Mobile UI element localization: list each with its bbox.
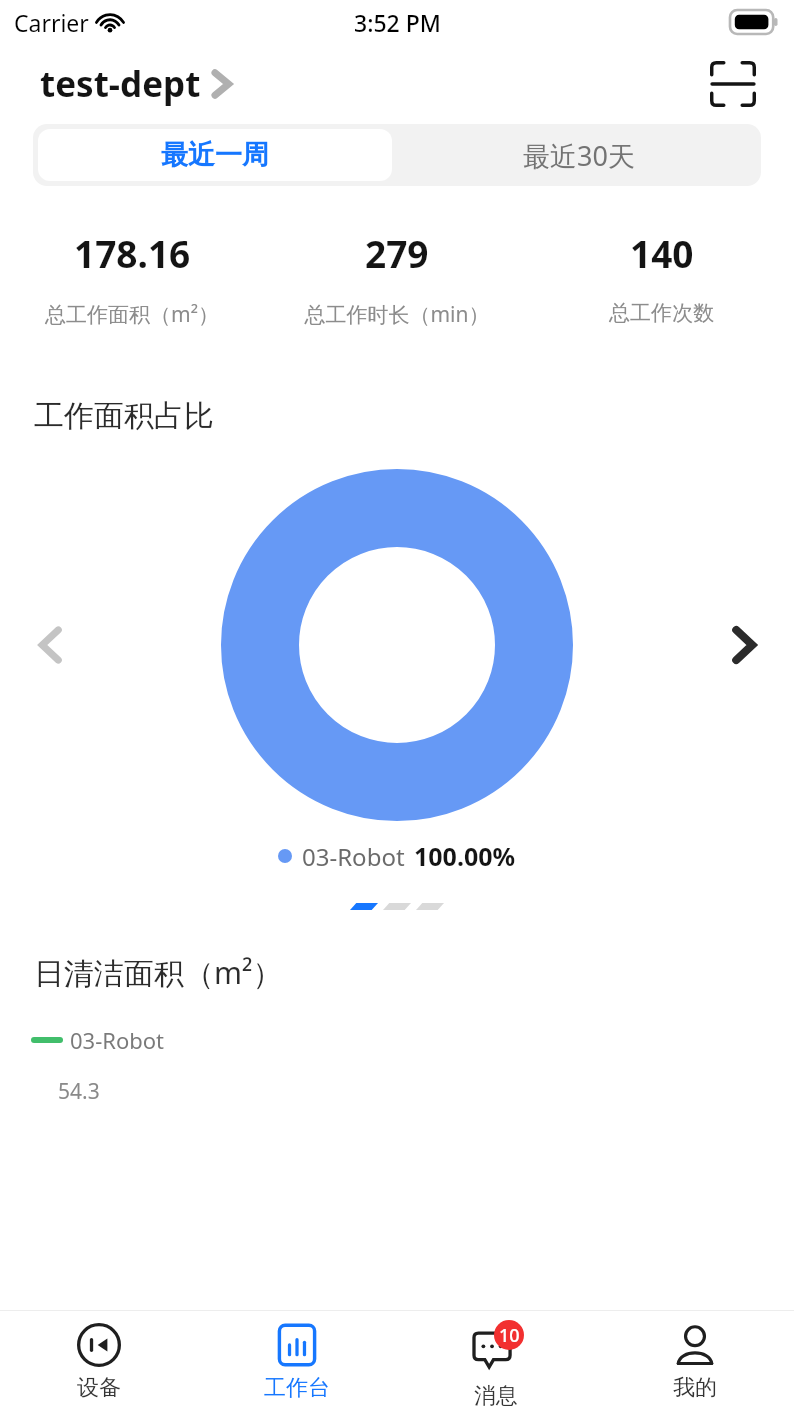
staticText: 279 bbox=[365, 228, 429, 278]
staticText: 10 bbox=[499, 1323, 520, 1348]
staticText: 工作面积占比 bbox=[34, 397, 214, 435]
button[interactable]: 最近一周 bbox=[38, 129, 392, 181]
staticText: 日清洁面积（m²） bbox=[34, 952, 283, 993]
button[interactable]: 最近30天 bbox=[397, 124, 761, 186]
staticText: 140 bbox=[630, 228, 694, 278]
staticText: 设备 bbox=[77, 1374, 121, 1402]
staticText: 178.16 bbox=[74, 228, 191, 278]
staticText: 我的 bbox=[673, 1374, 717, 1402]
staticText: 最近30天 bbox=[523, 137, 635, 174]
staticText: 100.00% bbox=[414, 839, 516, 873]
staticText: Carrier bbox=[14, 7, 89, 38]
button[interactable]: 10 bbox=[396, 1311, 595, 1416]
staticText: 03-Robot bbox=[302, 840, 405, 873]
staticText: 总工作次数 bbox=[609, 300, 714, 326]
button[interactable]: Previous chart bbox=[22, 617, 78, 673]
staticText: 3:52 PM bbox=[354, 7, 441, 38]
staticText: 最近一周 bbox=[161, 138, 269, 172]
staticText: 03-Robot bbox=[70, 1025, 165, 1055]
button[interactable]: Next chart bbox=[716, 617, 772, 673]
button[interactable]: 我的 bbox=[595, 1311, 794, 1416]
staticText: 工作台 bbox=[264, 1374, 330, 1402]
staticText: test-dept bbox=[40, 60, 201, 108]
staticText: 总工作时长（min） bbox=[304, 300, 490, 329]
staticText: 54.3 bbox=[58, 1077, 100, 1106]
button[interactable]: Scan QR code bbox=[702, 53, 764, 115]
staticText: 消息 bbox=[474, 1382, 518, 1410]
button[interactable]: test-dept bbox=[40, 60, 233, 108]
staticText: 总工作面积（m²） bbox=[45, 300, 219, 329]
button[interactable]: 工作台 bbox=[198, 1311, 396, 1416]
button[interactable]: 设备 bbox=[0, 1311, 198, 1416]
